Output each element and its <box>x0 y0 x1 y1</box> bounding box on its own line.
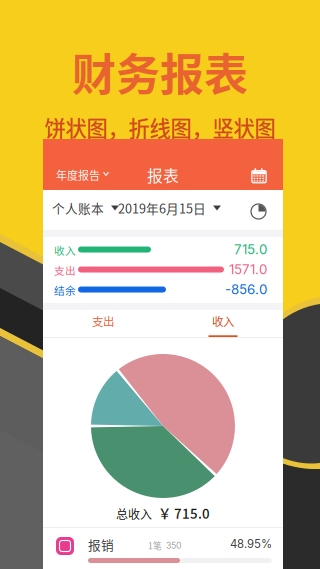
staticText: 年度报告 <box>56 167 100 183</box>
staticText: 报表 <box>147 164 179 186</box>
staticText: 收入 <box>54 242 76 258</box>
button[interactable]: 支出 <box>43 314 163 328</box>
staticText: 财务报表 <box>72 40 248 104</box>
staticText: 报销 <box>88 535 114 554</box>
button[interactable]: 收入 <box>163 314 283 336</box>
button[interactable]: 个人账本 <box>52 200 119 216</box>
staticText: 1571.0 <box>229 261 267 277</box>
staticText: 支出 <box>92 313 114 329</box>
button[interactable]: 年度报告 <box>56 166 110 184</box>
staticText: -856.0 <box>225 281 267 297</box>
staticText: 饼状图，折线图，竖状图 <box>44 112 275 143</box>
button[interactable]: 报销 <box>43 527 283 569</box>
staticText: 收入 <box>212 313 234 329</box>
staticText: 结余 <box>54 282 76 298</box>
staticText: 个人账本 <box>52 199 104 217</box>
staticText: 总收入 ￥ 715.0 <box>116 504 210 522</box>
staticText: 350 <box>166 540 181 551</box>
staticText: 1笔 <box>148 539 162 552</box>
staticText: 2019年6月15日 <box>118 199 206 217</box>
button[interactable]: Chart style <box>251 204 267 220</box>
staticText: 715.0 <box>234 241 267 257</box>
button[interactable]: 2019年6月15日 <box>118 200 221 216</box>
button[interactable]: Calendar <box>249 166 269 186</box>
staticText: 支出 <box>54 262 76 278</box>
staticText: 48.95% <box>230 537 272 551</box>
